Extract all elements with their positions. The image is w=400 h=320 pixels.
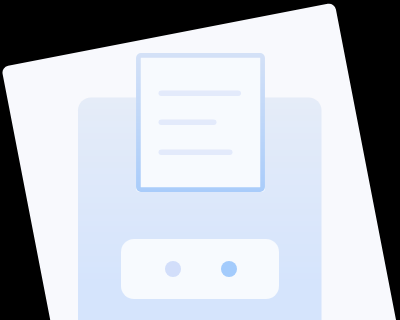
button[interactable]: Next page	[213, 253, 245, 285]
button[interactable]: Previous page	[157, 253, 189, 285]
button[interactable]: Open document	[136, 53, 265, 192]
